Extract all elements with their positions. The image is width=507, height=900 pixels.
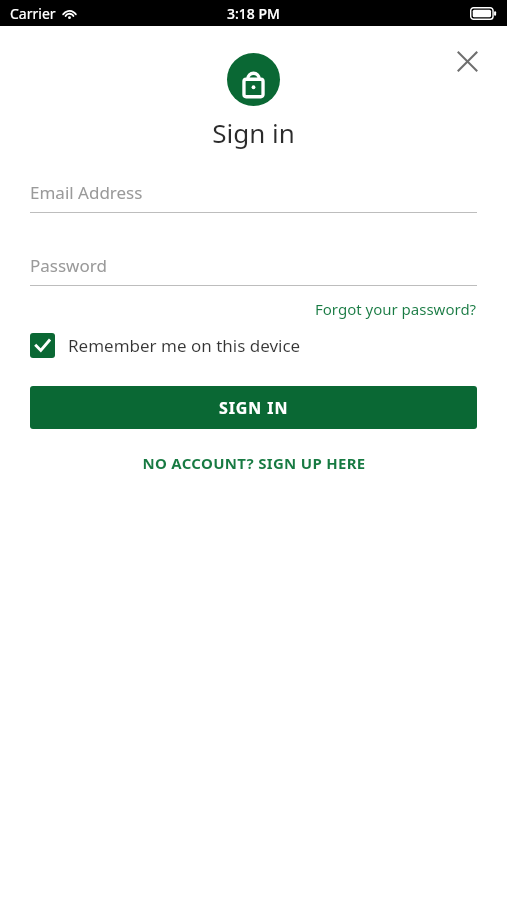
staticText: Email Address (30, 181, 143, 204)
button[interactable]: Forgot your password? (315, 297, 477, 321)
staticText: Password (30, 254, 107, 277)
staticText: SIGN IN (219, 397, 289, 419)
button[interactable]: Close (449, 43, 485, 79)
staticText: Remember me on this device (68, 334, 301, 357)
button[interactable]: NO ACCOUNT? SIGN UP HERE (130, 447, 378, 479)
button[interactable]: SIGN IN (30, 386, 477, 429)
staticText: Forgot your password? (315, 299, 477, 319)
staticText: Carrier (10, 4, 56, 23)
staticText: 3:18 PM (227, 4, 280, 23)
staticText: NO ACCOUNT? SIGN UP HERE (142, 453, 366, 473)
staticText: Sign in (212, 115, 295, 150)
button[interactable]: Password (30, 250, 477, 286)
button[interactable]: Email Address (30, 177, 477, 213)
button[interactable]: Remember me on this device (30, 333, 301, 358)
